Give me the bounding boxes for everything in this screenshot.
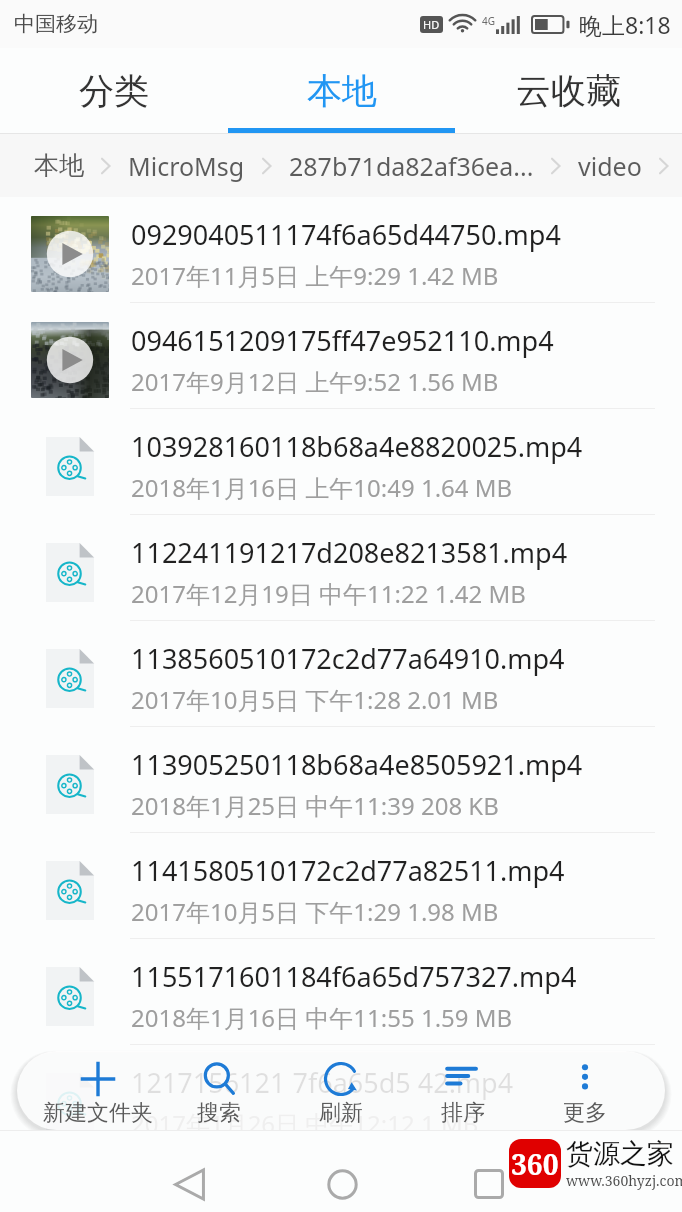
button[interactable]: 分类 [0,48,228,133]
button[interactable]: Search [158,1051,280,1127]
button[interactable]: New folder [37,1051,158,1127]
button[interactable]: 云收藏 [455,48,682,133]
staticText: 新建文件夹 [43,1099,153,1127]
staticText: 1138560510172c2d77a64910.mp4 [131,640,565,677]
button[interactable]: 103928160118b68a4e8820025.mp4 [0,409,682,515]
button[interactable]: 112241191217d208e8213581.mp4 [0,515,682,621]
staticText: MicroMsg [128,149,245,183]
button[interactable]: 1141580510172c2d77a82511.mp4 [0,833,682,939]
staticText: 2017年10月5日 下午1:29 1.98 MB [131,895,499,928]
staticText: 本地 [307,69,377,113]
other: Search [201,1061,237,1097]
button[interactable]: MicroMsg [114,149,259,183]
staticText: 排序 [441,1099,485,1127]
staticText: 1217156121 7f6a65d5 42.mp4 [131,1064,514,1101]
staticText: 2017年10月5日 下午1:28 2.01 MB [131,683,499,716]
button[interactable]: 113905250118b68a4e8505921.mp4 [0,727,682,833]
staticText: 刷新 [319,1099,363,1127]
button[interactable]: Recents [453,1148,525,1212]
staticText: www.360hyzj.com [566,1171,682,1190]
staticText: 2017年11月5日 上午9:29 1.42 MB [131,259,499,292]
button[interactable]: video [564,149,656,183]
staticText: 本地 [34,150,84,181]
button[interactable]: 本地 [20,150,98,181]
button[interactable]: Refresh [280,1051,402,1127]
button[interactable]: Back [153,1148,225,1212]
staticText: 287b71da82af36ea... [289,149,534,183]
button[interactable]: 0946151209175ff47e952110.mp4 [0,303,682,409]
staticText: 更多 [563,1099,607,1127]
staticText: 中国移动 [14,11,98,37]
staticText: 0929040511174f6a65d44750.mp4 [131,216,561,253]
staticText: 113905250118b68a4e8505921.mp4 [131,746,583,783]
staticText: 103928160118b68a4e8820025.mp4 [131,428,583,465]
staticText: 2017年1月26日 中午12:12 1 MB [131,1107,479,1140]
button[interactable]: 0929040511174f6a65d44750.mp4 [0,197,682,303]
staticText: 云收藏 [516,69,621,113]
staticText: 2018年1月25日 中午11:39 208 KB [131,789,499,822]
staticText: 晚上8:18 [579,9,671,40]
other: Sort [445,1061,481,1097]
staticText: 2018年1月16日 上午10:49 1.64 MB [131,471,513,504]
staticText: 4G [482,14,495,28]
staticText: video [578,149,642,183]
staticText: 货源之家 [566,1137,674,1171]
staticText: 112241191217d208e8213581.mp4 [131,534,568,571]
staticText: 搜索 [197,1099,241,1127]
staticText: 360 [511,1145,559,1183]
staticText: 2018年1月16日 中午11:55 1.59 MB [131,1001,513,1034]
staticText: 1141580510172c2d77a82511.mp4 [131,852,565,889]
staticText: HD [423,17,440,32]
button[interactable]: 本地 [228,48,455,133]
button[interactable]: More [524,1051,646,1127]
staticText: 2017年9月12日 上午9:52 1.56 MB [131,365,499,398]
other: New folder [80,1061,116,1097]
button[interactable]: 1155171601184f6a65d757327.mp4 [0,939,682,1045]
button[interactable]: Home [306,1148,378,1212]
staticText: 0946151209175ff47e952110.mp4 [131,322,554,359]
other: Refresh [323,1061,359,1097]
staticText: 1155171601184f6a65d757327.mp4 [131,958,577,995]
button[interactable]: 1138560510172c2d77a64910.mp4 [0,621,682,727]
button[interactable]: 287b71da82af36ea... [275,149,548,183]
other: More [567,1061,603,1097]
button[interactable]: Sort [402,1051,524,1127]
staticText: 2017年12月19日 中午11:22 1.42 MB [131,577,526,610]
button[interactable]: 1217156121 7f6a65d5 42.mp4 [0,1045,682,1151]
staticText: 分类 [79,69,149,113]
